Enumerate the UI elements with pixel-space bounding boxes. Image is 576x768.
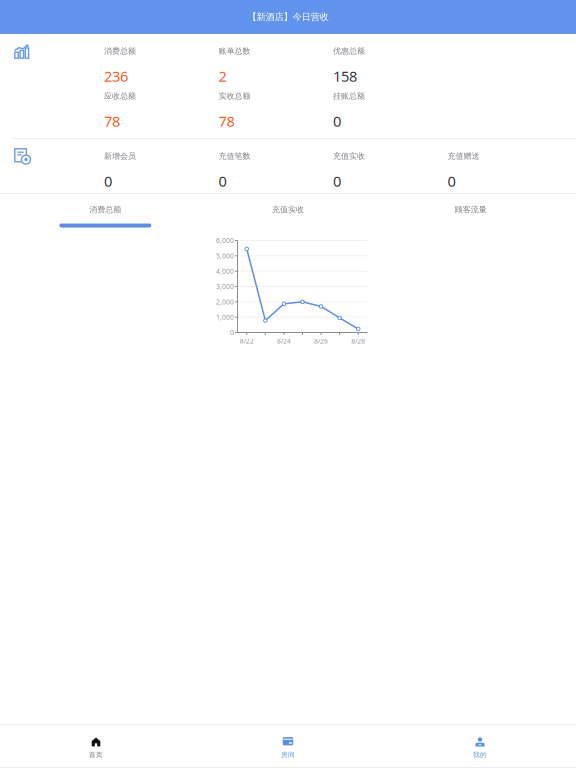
staticText: 挂账总额: [333, 91, 365, 101]
staticText: 0: [218, 171, 226, 191]
staticText: 消费总额: [104, 46, 136, 56]
staticText: 充值实收: [333, 151, 365, 161]
staticText: 78: [218, 111, 234, 131]
staticText: 实收总额: [218, 91, 250, 101]
staticText: 充值实收: [272, 205, 304, 214]
staticText: 158: [333, 66, 357, 86]
staticText: 5,000: [216, 251, 234, 260]
staticText: 0: [333, 171, 341, 191]
staticText: 房间: [281, 751, 295, 759]
staticText: 8/26: [314, 337, 328, 345]
staticText: 78: [104, 111, 120, 131]
button[interactable]: 我的: [384, 725, 576, 767]
staticText: 2,000: [216, 297, 234, 306]
button[interactable]: 充值实收: [197, 194, 379, 227]
staticText: 新增会员: [104, 151, 136, 161]
staticText: 应收总额: [104, 91, 136, 101]
staticText: 2: [218, 66, 226, 86]
staticText: 充值笔数: [218, 151, 250, 161]
staticText: 1,000: [216, 313, 234, 322]
staticText: 8/28: [351, 337, 365, 345]
staticText: 0: [333, 111, 341, 131]
staticText: 账单总数: [218, 46, 250, 56]
staticText: 消费总额: [89, 205, 121, 214]
staticText: 8/22: [240, 337, 254, 345]
button[interactable]: 顾客流量: [379, 194, 562, 227]
staticText: 我的: [473, 751, 487, 759]
staticText: 0: [230, 328, 234, 337]
button[interactable]: 消费总额: [14, 194, 197, 227]
staticText: 6,000: [216, 236, 234, 245]
button[interactable]: 房间: [192, 725, 384, 767]
staticText: 236: [104, 66, 128, 86]
staticText: 4,000: [216, 267, 234, 276]
staticText: 3,000: [216, 282, 234, 291]
staticText: 充值赠送: [447, 151, 479, 161]
staticText: 0: [447, 171, 455, 191]
staticText: 首页: [89, 751, 103, 759]
button[interactable]: 首页: [0, 725, 192, 767]
staticText: 【新酒店】今日营收: [247, 11, 328, 23]
staticText: 8/24: [277, 337, 291, 345]
staticText: 优惠总额: [333, 46, 365, 56]
staticText: 0: [104, 171, 112, 191]
staticText: 顾客流量: [455, 205, 487, 214]
